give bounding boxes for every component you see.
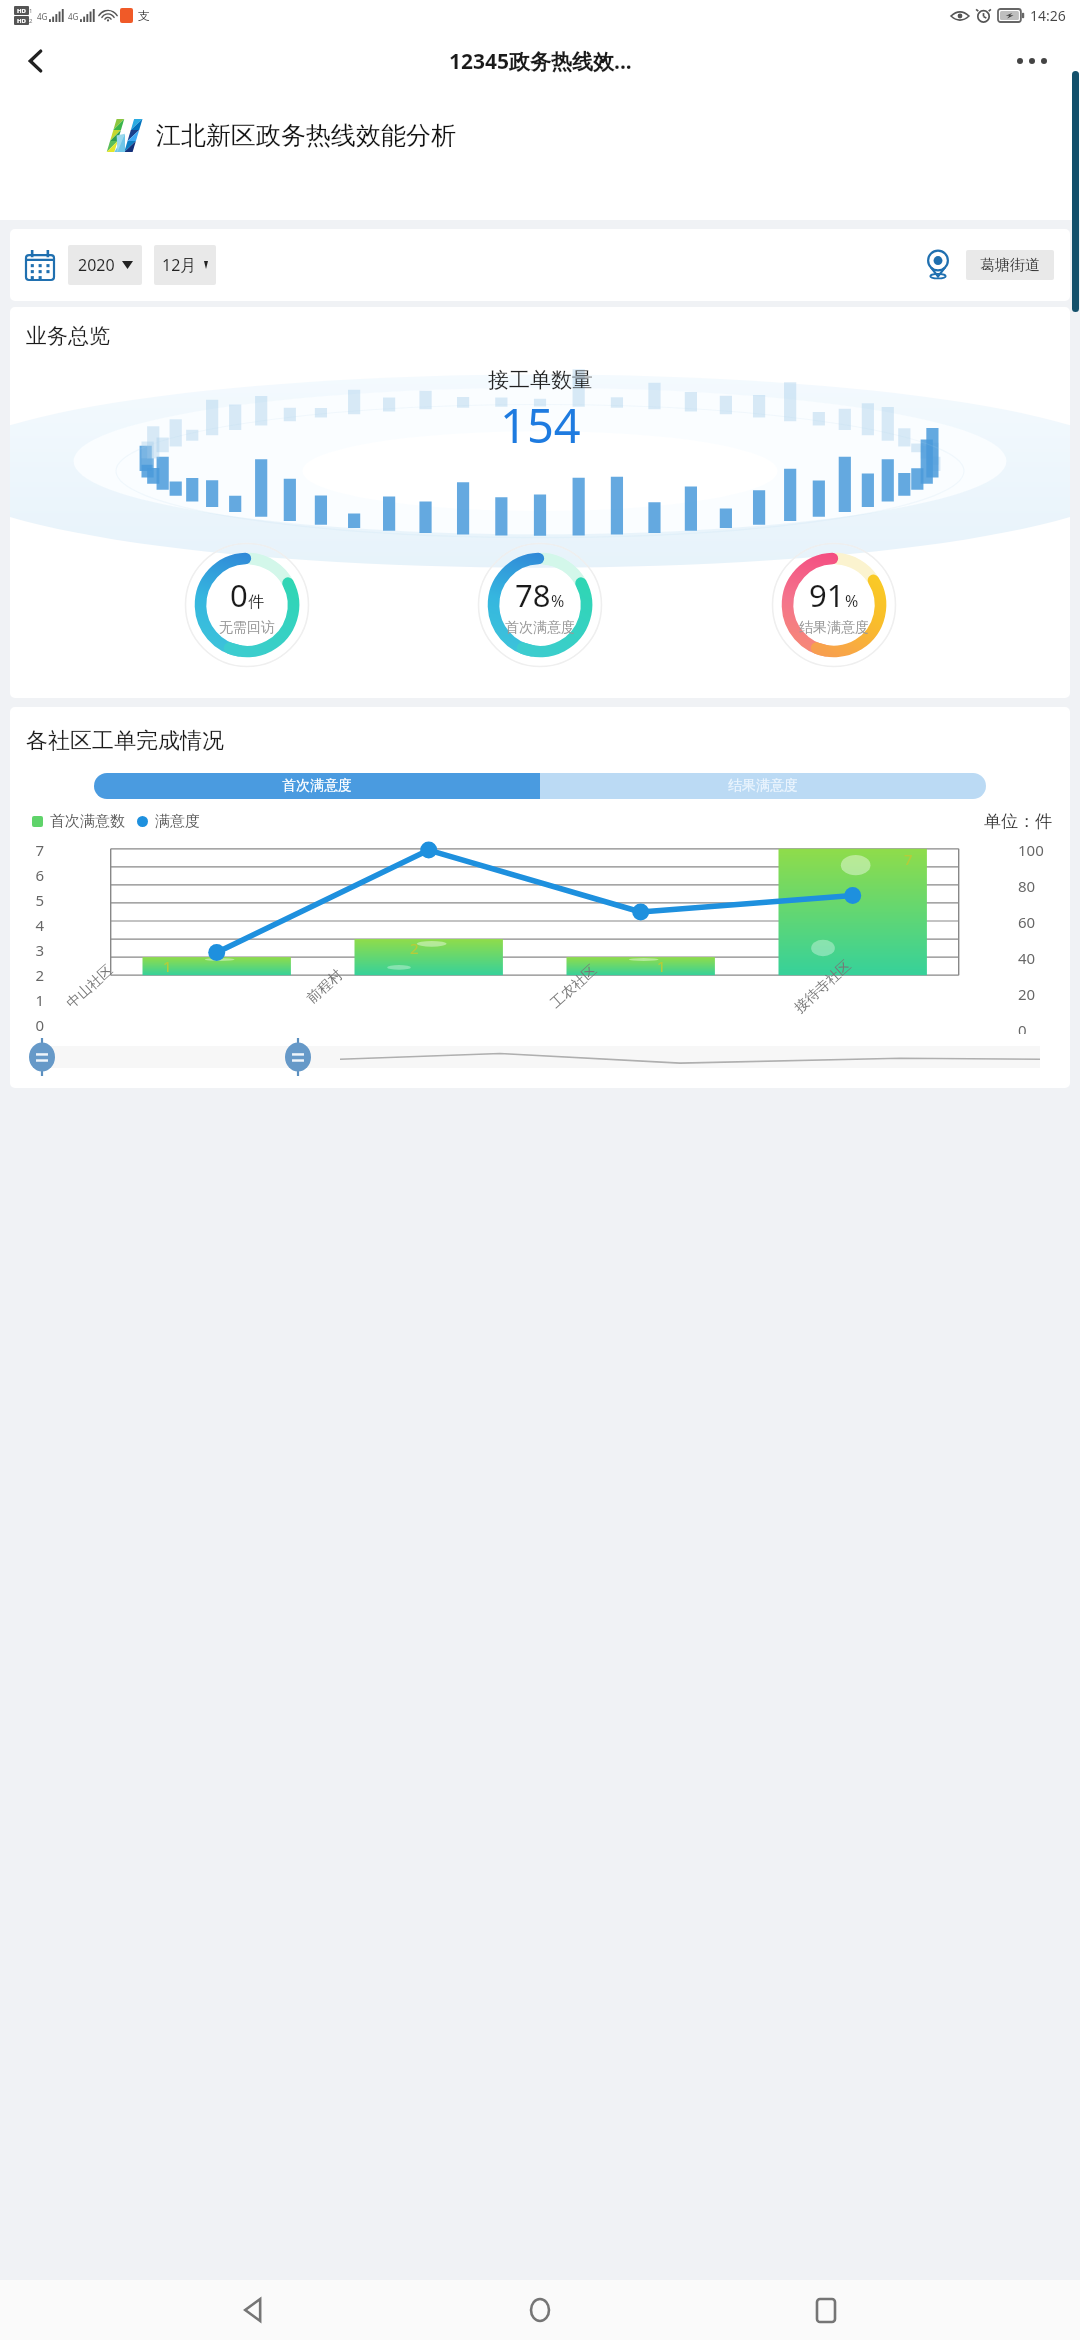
staticText: HD: [17, 7, 26, 15]
staticText: 0: [230, 574, 248, 616]
staticText: 件: [248, 592, 264, 612]
staticText: 支: [138, 8, 150, 23]
staticText: 首次满意度: [505, 619, 575, 637]
staticText: 91: [809, 574, 845, 616]
button[interactable]: Location: [920, 247, 956, 283]
staticText: 3: [35, 940, 44, 960]
staticText: 单位：件: [984, 811, 1052, 832]
button[interactable]: More options: [1006, 35, 1058, 87]
button[interactable]: Recents: [794, 2280, 858, 2340]
staticText: 结果满意度: [799, 619, 869, 637]
staticText: %: [845, 590, 859, 612]
staticText: 0: [35, 1015, 44, 1034]
button[interactable]: 结果满意度: [540, 773, 986, 799]
staticText: 60: [1018, 912, 1036, 932]
staticText: 4: [35, 915, 44, 935]
staticText: 7: [904, 849, 913, 869]
staticText: 7: [35, 840, 44, 860]
button[interactable]: 78: [477, 542, 603, 668]
staticText: HD: [17, 17, 26, 25]
staticText: 5: [35, 890, 44, 910]
button[interactable]: 91: [771, 542, 897, 668]
staticText: 首次满意数: [50, 812, 125, 831]
staticText: 各社区工单完成情况: [26, 727, 224, 755]
staticText: 12345政务热线效...: [449, 47, 632, 76]
staticText: 中山社区: [63, 962, 117, 1012]
staticText: 4G: [37, 11, 48, 22]
staticText: 江北新区政务热线效能分析: [156, 120, 456, 151]
staticText: 2: [410, 938, 419, 958]
button[interactable]: 12月: [154, 245, 216, 285]
staticText: 20: [1018, 984, 1036, 1004]
button[interactable]: 葛塘街道: [966, 250, 1054, 280]
staticText: 2020: [78, 254, 115, 276]
button[interactable]: Back: [222, 2280, 286, 2340]
staticText: 2: [35, 965, 44, 985]
staticText: 80: [1018, 876, 1036, 896]
staticText: 满意度: [155, 812, 200, 831]
staticText: 无需回访: [219, 619, 275, 637]
staticText: 40: [1018, 948, 1036, 968]
staticText: 工农社区: [547, 962, 601, 1012]
staticText: 前程村: [303, 966, 347, 1008]
button[interactable]: Back: [10, 35, 62, 87]
staticText: 6: [35, 865, 44, 885]
staticText: 1: [35, 990, 44, 1010]
button[interactable]: 0: [184, 542, 310, 668]
staticText: 78: [515, 574, 551, 616]
button[interactable]: Zoom handle: [29, 1038, 55, 1076]
staticText: 154: [500, 393, 581, 457]
staticText: 0: [1018, 1020, 1027, 1034]
staticText: 1: [29, 7, 33, 15]
staticText: 结果满意度: [728, 777, 798, 795]
button[interactable]: 2020: [68, 245, 142, 285]
staticText: 葛塘街道: [980, 256, 1040, 275]
button[interactable]: Zoom handle: [285, 1038, 311, 1076]
staticText: 2: [29, 17, 33, 25]
button[interactable]: Home: [508, 2280, 572, 2340]
staticText: %: [551, 590, 565, 612]
staticText: 1: [163, 956, 172, 976]
staticText: 14:26: [1030, 6, 1066, 25]
staticText: 接工单数量: [488, 367, 593, 393]
staticText: 接待寺社区: [791, 957, 855, 1017]
staticText: 首次满意度: [282, 777, 352, 795]
staticText: 4G: [68, 11, 79, 22]
staticText: 1: [657, 956, 666, 976]
staticText: 12月: [162, 254, 197, 276]
button[interactable]: 首次满意度: [94, 773, 540, 799]
staticText: 业务总览: [26, 323, 110, 349]
staticText: 100: [1018, 840, 1044, 860]
